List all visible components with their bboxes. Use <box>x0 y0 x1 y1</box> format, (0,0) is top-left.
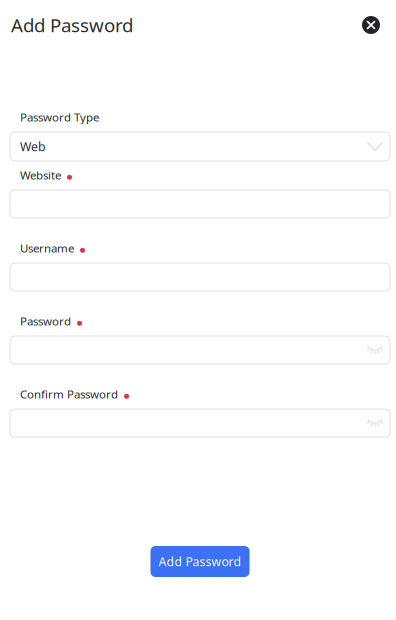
staticText: Add Password <box>11 12 133 38</box>
button[interactable]: Web <box>10 132 390 161</box>
staticText: Web <box>20 138 46 155</box>
button[interactable]: Add Password <box>150 546 249 577</box>
staticText: Password <box>20 313 71 329</box>
staticText: Add Password <box>158 553 241 570</box>
staticText: Username <box>20 240 74 256</box>
button[interactable] <box>10 190 390 218</box>
button[interactable] <box>10 263 390 291</box>
button[interactable] <box>10 336 390 364</box>
staticText: Website <box>20 167 61 183</box>
button[interactable] <box>10 409 390 437</box>
staticText: Confirm Password <box>20 386 118 402</box>
button[interactable]: Close <box>356 10 386 40</box>
staticText: Password Type <box>20 109 99 125</box>
